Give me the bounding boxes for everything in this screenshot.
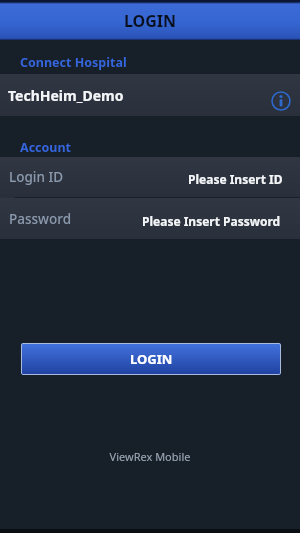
staticText: Account (20, 139, 72, 156)
staticText: LOGIN (130, 350, 173, 368)
staticText: Password (9, 210, 72, 228)
staticText: Login ID (9, 168, 64, 186)
staticText: Connect Hospital (20, 54, 127, 71)
staticText: LOGIN (124, 10, 177, 32)
staticText: TechHeim_Demo (8, 86, 124, 105)
button[interactable]: LOGIN (21, 343, 281, 375)
button[interactable]: Password (0, 198, 300, 239)
staticText: ViewRex Mobile (0, 449, 300, 464)
staticText: Please Insert ID (188, 171, 283, 187)
button[interactable]: Login ID (0, 157, 300, 197)
staticText: Please Insert Password (142, 213, 281, 229)
button[interactable]: TechHeim_Demo (0, 74, 300, 116)
